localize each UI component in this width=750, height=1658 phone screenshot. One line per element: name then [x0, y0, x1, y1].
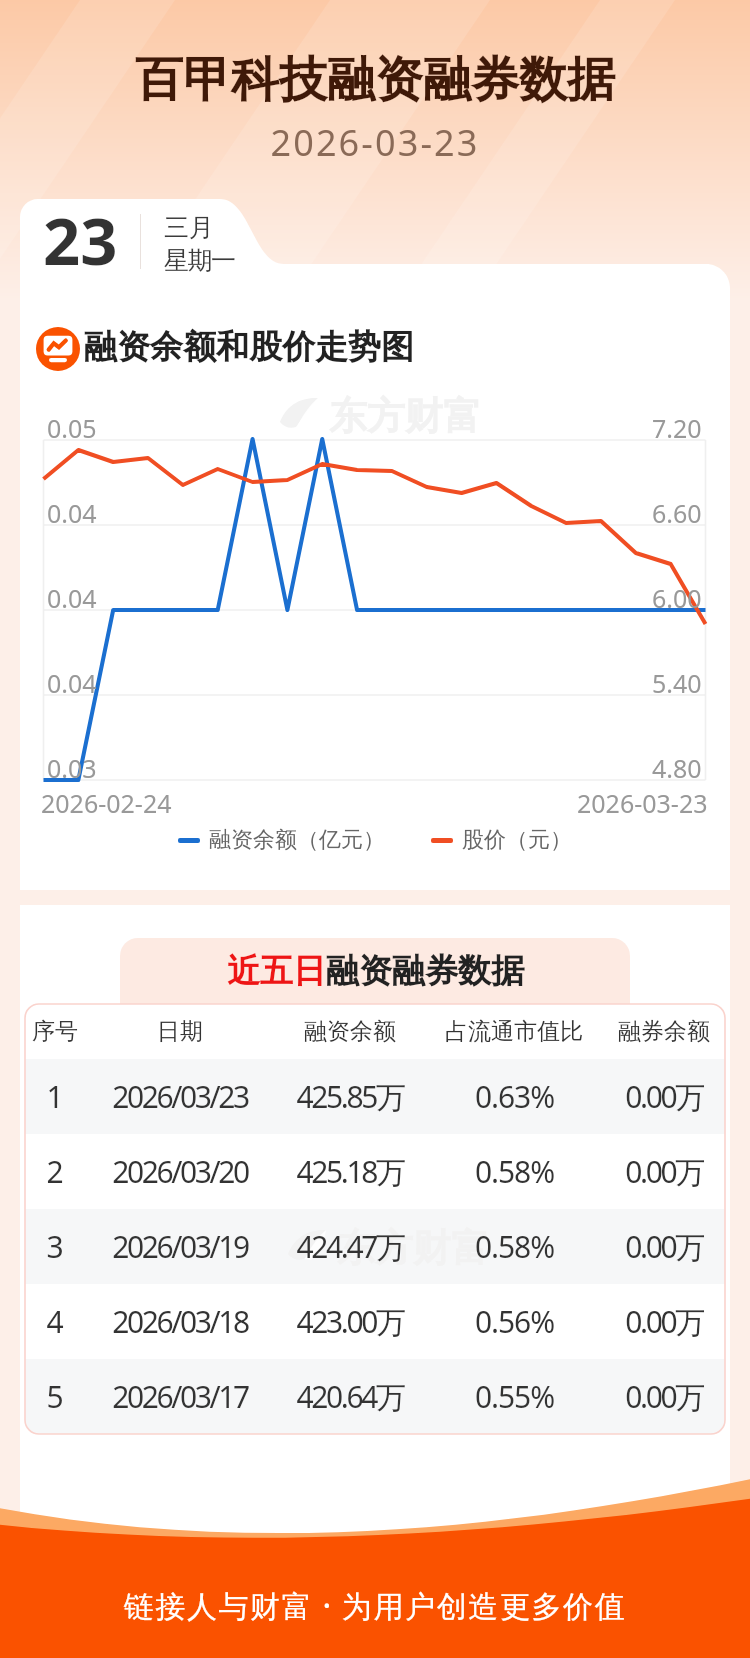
staticText: 2026-03-23 — [577, 786, 708, 820]
staticText: 420.64万 — [296, 1376, 404, 1417]
staticText: 425.85万 — [296, 1076, 404, 1117]
button[interactable]: 5 — [25, 1359, 725, 1434]
staticText: 0.55% — [475, 1376, 554, 1417]
staticText: 星期一 — [164, 245, 235, 276]
staticText: 0.00万 — [625, 1076, 703, 1117]
staticText: 融资余额 — [304, 1017, 396, 1046]
button[interactable]: 走势图 — [36, 327, 80, 371]
staticText: 链接人与财富 · 为用户创造更多价值 — [0, 1585, 750, 1626]
button[interactable]: 4 — [25, 1284, 725, 1359]
staticText: 融券余额 — [618, 1017, 710, 1046]
button[interactable]: 股价（元） — [431, 825, 572, 855]
button[interactable]: 融资余额（亿元） — [178, 825, 385, 855]
staticText: 0.05 — [47, 411, 97, 445]
staticText: 4 — [46, 1301, 64, 1342]
staticText: 2026/03/20 — [112, 1151, 248, 1192]
button[interactable]: 1 — [25, 1059, 725, 1134]
staticText: 百甲科技融资融券数据 — [0, 50, 750, 110]
staticText: 5.40 — [652, 666, 702, 700]
staticText: 2026/03/18 — [112, 1301, 248, 1342]
staticText: 0.00万 — [625, 1376, 703, 1417]
staticText: 0.56% — [475, 1301, 554, 1342]
staticText: 2 — [46, 1151, 64, 1192]
staticText: 23 — [43, 196, 118, 285]
staticText: 股价（元） — [462, 826, 572, 854]
staticText: 0.00万 — [625, 1301, 703, 1342]
staticText: 2026/03/19 — [112, 1226, 248, 1267]
staticText: 东方财富 — [337, 1224, 489, 1272]
staticText: 423.00万 — [296, 1301, 404, 1342]
staticText: 序号 — [32, 1017, 78, 1046]
staticText: 0.00万 — [625, 1226, 703, 1267]
staticText: 0.04 — [47, 666, 97, 700]
staticText: 2026-03-23 — [0, 118, 750, 167]
button[interactable]: 3 — [25, 1209, 725, 1284]
staticText: 0.03 — [47, 751, 97, 785]
staticText: 5 — [46, 1376, 64, 1417]
staticText: 0.63% — [475, 1076, 554, 1117]
staticText: 融资余额（亿元） — [209, 826, 385, 854]
staticText: 2026-02-24 — [41, 786, 172, 820]
staticText: 6.00 — [652, 581, 702, 615]
staticText: 占流通市值比 — [445, 1017, 583, 1046]
staticText: 0.58% — [475, 1151, 554, 1192]
staticText: 近五日融资融券数据 — [227, 950, 524, 992]
staticText: 0.58% — [475, 1226, 554, 1267]
staticText: 6.60 — [652, 496, 702, 530]
button[interactable]: 2 — [25, 1134, 725, 1209]
staticText: 0.00万 — [625, 1151, 703, 1192]
staticText: 424.47万 — [296, 1226, 404, 1267]
staticText: 0.04 — [47, 496, 97, 530]
staticText: 7.20 — [652, 411, 702, 445]
staticText: 融资余额和股价走势图 — [84, 326, 414, 368]
button[interactable]: 序号 — [25, 1004, 725, 1059]
staticText: 三月 — [164, 212, 214, 243]
staticText: 1 — [46, 1076, 64, 1117]
staticText: 3 — [46, 1226, 64, 1267]
staticText: 2026/03/17 — [112, 1376, 248, 1417]
staticText: 日期 — [157, 1017, 203, 1046]
staticText: 2026/03/23 — [112, 1076, 248, 1117]
staticText: 0.04 — [47, 581, 97, 615]
staticText: 425.18万 — [296, 1151, 404, 1192]
staticText: 4.80 — [652, 751, 702, 785]
staticText: 东方财富 — [329, 392, 481, 440]
